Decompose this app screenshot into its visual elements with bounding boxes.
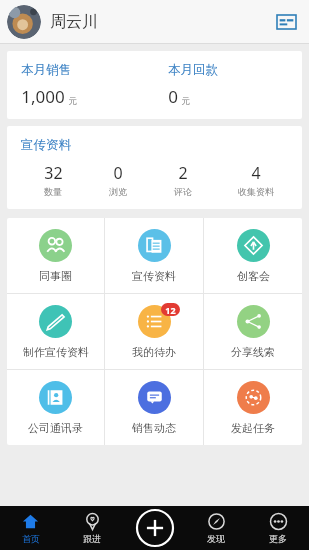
button[interactable]: 分享线索 [204, 294, 302, 369]
staticText: 收集资料 [238, 186, 274, 197]
staticText: 32 [44, 162, 63, 184]
button[interactable]: 发起任务 [204, 370, 302, 445]
staticText: 首页 [22, 533, 40, 544]
button[interactable]: 首页 [0, 506, 61, 550]
staticText: 0 [113, 162, 123, 184]
staticText: 销售动态 [132, 421, 176, 435]
staticText: 我的待办 [132, 345, 176, 359]
button[interactable]: 销售动态 [105, 370, 203, 445]
staticText: 1,000 [21, 85, 65, 108]
staticText: 元 [68, 96, 77, 107]
button[interactable]: 宣传资料 [7, 126, 302, 209]
staticText: 评论 [174, 186, 192, 197]
staticText: 浏览 [109, 186, 127, 197]
button[interactable]: Profile avatar [7, 5, 41, 39]
button[interactable]: 公司通讯录 [7, 370, 104, 445]
staticText: 2 [178, 162, 188, 184]
button[interactable]: 创客会 [204, 218, 302, 293]
staticText: 数量 [44, 186, 62, 197]
button[interactable]: 本月回款 [154, 51, 302, 119]
staticText: 宣传资料 [21, 137, 71, 153]
button[interactable]: 同事圈 [7, 218, 104, 293]
button[interactable]: Business card [273, 9, 299, 35]
staticText: 元 [181, 96, 190, 107]
button[interactable]: 更多 [247, 506, 309, 550]
staticText: 12 [165, 304, 176, 316]
staticText: 分享线索 [231, 345, 275, 359]
staticText: 跟进 [83, 533, 101, 544]
staticText: 0 [168, 85, 178, 108]
button[interactable]: 跟进 [61, 506, 123, 550]
staticText: 周云川 [50, 12, 98, 32]
staticText: 创客会 [237, 269, 270, 283]
staticText: 同事圈 [39, 269, 72, 283]
staticText: 更多 [269, 533, 287, 544]
button[interactable]: 宣传资料 [105, 218, 203, 293]
staticText: 公司通讯录 [28, 421, 83, 435]
button[interactable]: 本月销售 [7, 51, 154, 119]
staticText: 发现 [207, 533, 225, 544]
staticText: 宣传资料 [132, 269, 176, 283]
staticText: 本月销售 [21, 62, 71, 78]
staticText: 本月回款 [168, 62, 218, 78]
button[interactable]: 12 [105, 294, 203, 369]
button[interactable]: Add [135, 508, 175, 548]
button[interactable]: 制作宣传资料 [7, 294, 104, 369]
staticText: 4 [251, 162, 261, 184]
staticText: 发起任务 [231, 421, 275, 435]
button[interactable]: 发现 [185, 506, 247, 550]
staticText: 制作宣传资料 [23, 345, 89, 359]
